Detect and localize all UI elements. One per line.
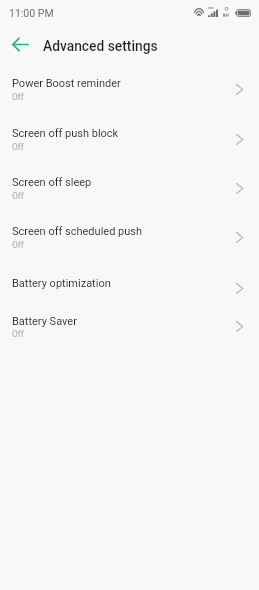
- button[interactable]: Screen off sleep: [0, 164, 259, 213]
- staticText: Screen off scheduled push: [12, 225, 143, 238]
- button[interactable]: Back: [0, 24, 41, 65]
- staticText: Screen off sleep: [12, 176, 92, 189]
- staticText: Off: [12, 240, 24, 250]
- button[interactable]: Screen off push block: [0, 115, 259, 164]
- staticText: Off: [12, 191, 24, 201]
- staticText: 11:00 PM: [9, 7, 54, 19]
- staticText: Power Boost reminder: [12, 77, 121, 90]
- staticText: Off: [12, 329, 24, 339]
- button[interactable]: Battery optimization: [0, 264, 259, 302]
- button[interactable]: Battery Saver: [0, 302, 259, 351]
- staticText: Off: [12, 92, 24, 102]
- staticText: Battery Saver: [12, 315, 77, 328]
- button[interactable]: Screen off scheduled push: [0, 213, 259, 264]
- staticText: Off: [12, 142, 24, 152]
- button[interactable]: Power Boost reminder: [0, 65, 259, 115]
- staticText: Screen off push block: [12, 127, 119, 140]
- staticText: Battery optimization: [12, 277, 111, 290]
- staticText: Advanced settings: [43, 38, 158, 54]
